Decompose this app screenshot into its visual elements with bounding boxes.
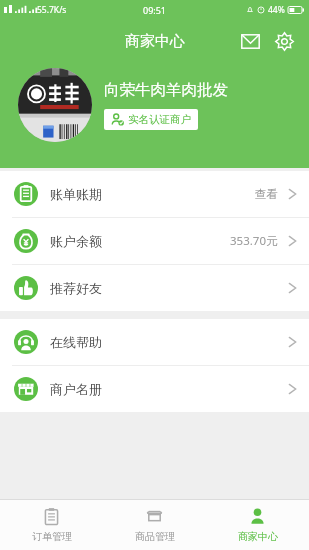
staticText: 商家中心 [238, 530, 278, 543]
button[interactable]: 账户余额 [0, 218, 309, 264]
staticText: 在线帮助 [50, 334, 102, 350]
button[interactable]: 商家中心 [206, 500, 309, 550]
button[interactable]: 推荐好友 [0, 265, 309, 311]
staticText: 账单账期 [50, 186, 102, 202]
button[interactable]: 账单账期 [0, 171, 309, 217]
staticText: 商品管理 [135, 530, 175, 543]
staticText: 实名认证商户 [128, 113, 191, 126]
button[interactable]: 商户名册 [0, 366, 309, 412]
staticText: 44% [268, 4, 285, 16]
staticText: 查看 [255, 187, 278, 201]
staticText: 353.70元 [230, 233, 278, 249]
staticText: 推荐好友 [50, 280, 102, 296]
staticText: 订单管理 [32, 530, 72, 543]
staticText: 55.7K/s [37, 4, 67, 16]
staticText: 09:51 [143, 4, 167, 16]
button[interactable]: Messages [233, 24, 267, 58]
button[interactable]: 实名认证商户 [104, 109, 198, 130]
button[interactable]: 订单管理 [0, 500, 103, 550]
button[interactable]: Settings [267, 24, 301, 58]
staticText: 账户余额 [50, 233, 102, 249]
staticText: 向荣牛肉羊肉批发 [104, 80, 228, 100]
staticText: 商户名册 [50, 381, 102, 397]
button[interactable]: 商品管理 [103, 500, 206, 550]
button[interactable]: 在线帮助 [0, 319, 309, 365]
staticText: 商家中心 [125, 32, 185, 51]
